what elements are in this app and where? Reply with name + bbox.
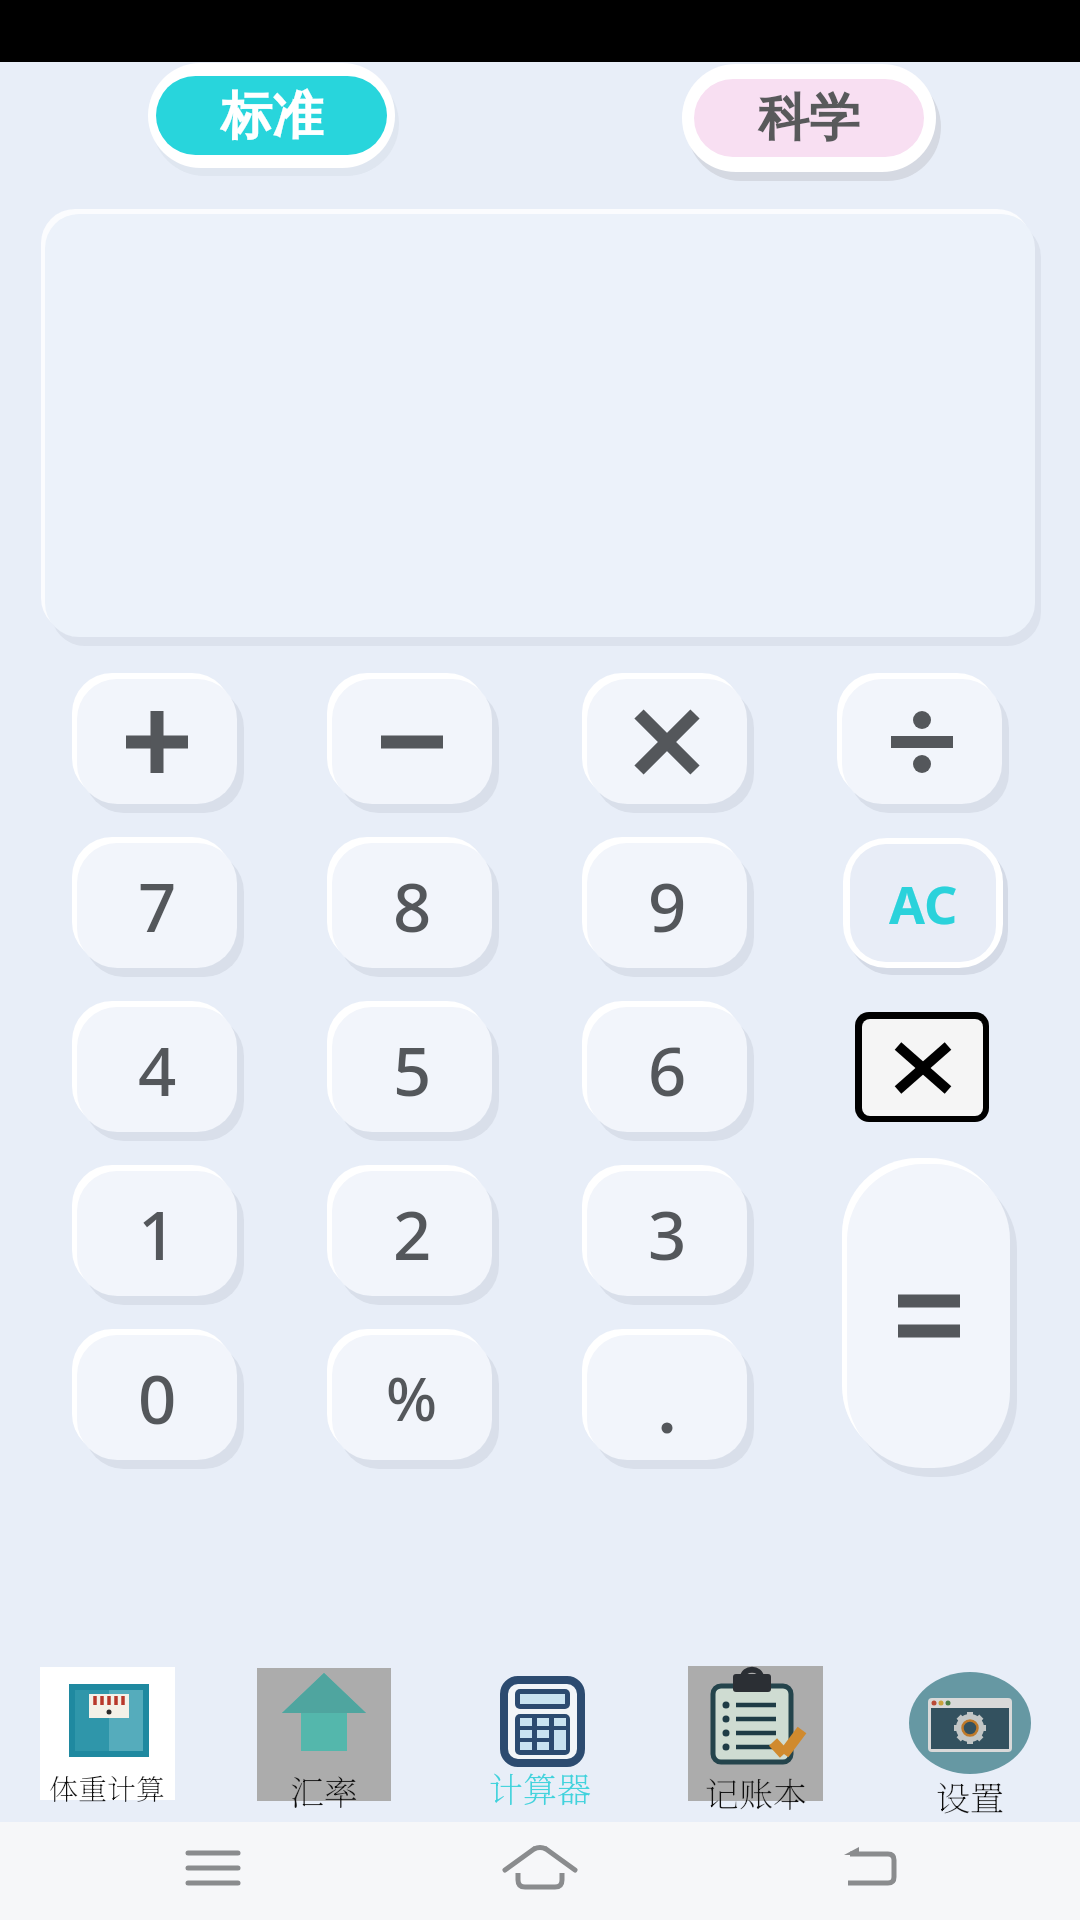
button[interactable] xyxy=(587,1335,747,1460)
staticText: 3 xyxy=(648,1188,687,1279)
button[interactable]: 体重计算 xyxy=(40,1667,175,1800)
button[interactable]: % xyxy=(332,1335,492,1460)
staticText: % xyxy=(386,1357,438,1439)
staticText: 7 xyxy=(138,860,177,951)
button[interactable]: 8 xyxy=(332,843,492,968)
button[interactable]: 9 xyxy=(587,843,747,968)
button[interactable] xyxy=(170,1835,255,1900)
button[interactable]: 汇率 xyxy=(257,1668,391,1801)
staticText: 4 xyxy=(138,1024,177,1115)
staticText: 2 xyxy=(393,1188,432,1279)
button[interactable] xyxy=(77,679,237,804)
button[interactable] xyxy=(842,679,1002,804)
staticText: 1 xyxy=(138,1188,177,1279)
staticText: 5 xyxy=(393,1024,432,1115)
staticText: 6 xyxy=(648,1024,687,1115)
button[interactable] xyxy=(830,1835,910,1900)
staticText: 计算器 xyxy=(489,1763,591,1812)
button[interactable]: AC xyxy=(850,844,996,962)
button[interactable]: 计算器 xyxy=(480,1660,600,1805)
button[interactable]: 标准 xyxy=(156,76,387,155)
staticText: AC xyxy=(889,868,958,939)
button[interactable]: 6 xyxy=(587,1007,747,1132)
staticText: 科学 xyxy=(758,86,860,150)
button[interactable]: 5 xyxy=(332,1007,492,1132)
button[interactable]: 科学 xyxy=(694,79,924,157)
button[interactable]: 4 xyxy=(77,1007,237,1132)
staticText: 0 xyxy=(138,1352,177,1443)
staticText: 体重计算 xyxy=(49,1767,166,1809)
staticText: 9 xyxy=(648,860,687,951)
staticText: 设置 xyxy=(936,1772,1004,1821)
button[interactable] xyxy=(847,1164,1010,1468)
staticText: 标准 xyxy=(221,84,323,148)
staticText: 汇率 xyxy=(290,1766,358,1815)
staticText: 8 xyxy=(393,860,432,951)
button[interactable] xyxy=(500,1835,580,1900)
button[interactable]: 记账本 xyxy=(688,1666,823,1801)
button[interactable]: 3 xyxy=(587,1171,747,1296)
button[interactable]: 1 xyxy=(77,1171,237,1296)
button[interactable] xyxy=(332,679,492,804)
button[interactable]: 7 xyxy=(77,843,237,968)
button[interactable]: 2 xyxy=(332,1171,492,1296)
staticText: 记账本 xyxy=(705,1768,807,1817)
button[interactable]: 0 xyxy=(77,1335,237,1460)
button[interactable] xyxy=(855,1012,989,1122)
button[interactable] xyxy=(587,679,747,804)
button[interactable]: 设置 xyxy=(900,1660,1040,1810)
